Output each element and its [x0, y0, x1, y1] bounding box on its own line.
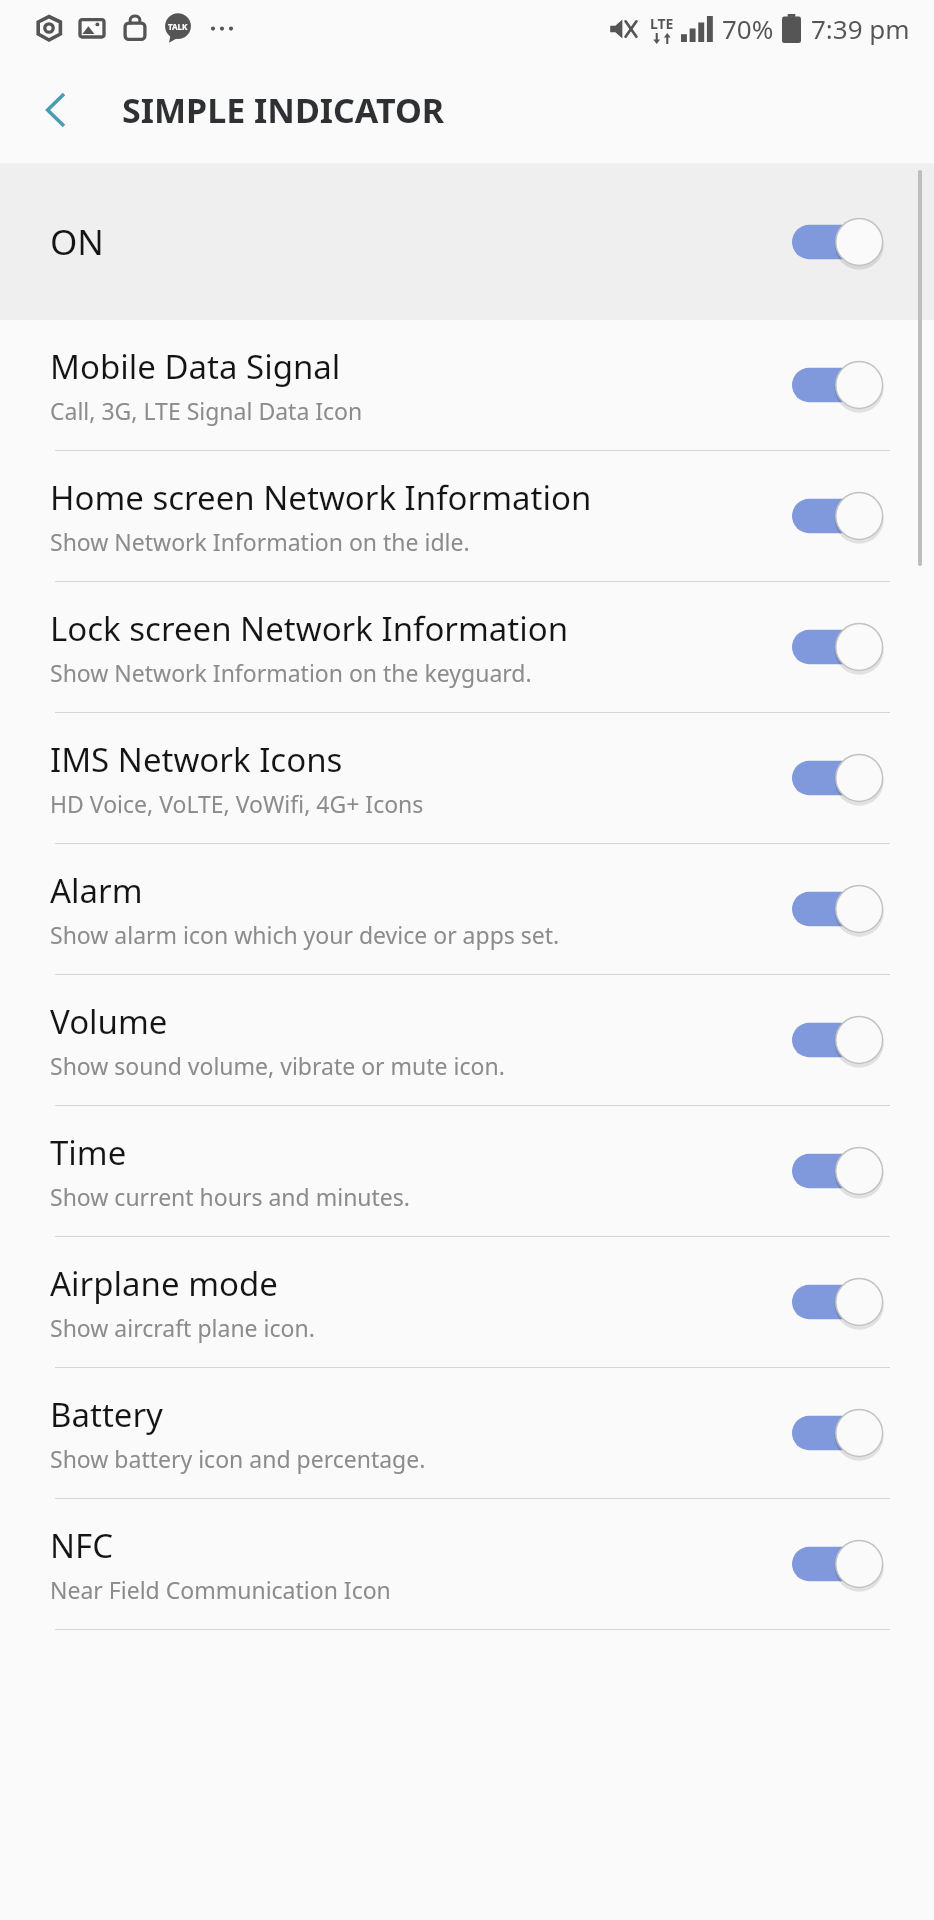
staticText: 70%: [722, 11, 774, 46]
staticText: Battery: [50, 1392, 163, 1437]
staticText: Mobile Data Signal: [50, 344, 341, 389]
button[interactable]: ON: [0, 163, 934, 320]
staticText: Show current hours and minutes.: [50, 1181, 411, 1212]
button[interactable]: Battery: [0, 1368, 934, 1498]
staticText: Time: [50, 1130, 127, 1175]
button[interactable]: Toggle: [792, 1538, 876, 1590]
button[interactable]: Toggle: [792, 359, 876, 411]
button[interactable]: Toggle: [792, 752, 876, 804]
button[interactable]: Toggle: [792, 883, 876, 935]
staticText: Volume: [50, 999, 168, 1044]
button[interactable]: NFC: [0, 1499, 934, 1629]
button[interactable]: Home screen Network Information: [0, 451, 934, 581]
button[interactable]: Mobile Data Signal: [0, 320, 934, 450]
button[interactable]: Toggle: [792, 621, 876, 673]
button[interactable]: Toggle: [792, 1407, 876, 1459]
staticText: Show alarm icon which your device or app…: [50, 919, 560, 950]
staticText: Show battery icon and percentage.: [50, 1443, 426, 1474]
staticText: Near Field Communication Icon: [50, 1574, 391, 1605]
button[interactable]: Toggle: [792, 1145, 876, 1197]
button[interactable]: Toggle: [792, 1276, 876, 1328]
button[interactable]: Toggle: [792, 490, 876, 542]
staticText: Show Network Information on the keyguard…: [50, 657, 532, 688]
staticText: SIMPLE INDICATOR: [122, 87, 445, 133]
staticText: Show aircraft plane icon.: [50, 1312, 315, 1343]
staticText: Call, 3G, LTE Signal Data Icon: [50, 395, 363, 426]
button[interactable]: Time: [0, 1106, 934, 1236]
staticText: LTE: [650, 14, 674, 33]
button[interactable]: Airplane mode: [0, 1237, 934, 1367]
staticText: Airplane mode: [50, 1261, 278, 1306]
staticText: Alarm: [50, 868, 143, 913]
staticText: Lock screen Network Information: [50, 606, 569, 651]
staticText: 7:39 pm: [811, 11, 910, 46]
staticText: ON: [50, 218, 104, 266]
staticText: IMS Network Icons: [50, 737, 343, 782]
button[interactable]: Toggle: [792, 216, 876, 268]
button[interactable]: Volume: [0, 975, 934, 1105]
staticText: NFC: [50, 1523, 114, 1568]
staticText: Home screen Network Information: [50, 475, 592, 520]
staticText: HD Voice, VoLTE, VoWifi, 4G+ Icons: [50, 788, 424, 819]
button[interactable]: Lock screen Network Information: [0, 582, 934, 712]
staticText: Show sound volume, vibrate or mute icon.: [50, 1050, 505, 1081]
staticText: Show Network Information on the idle.: [50, 526, 470, 557]
button[interactable]: Toggle: [792, 1014, 876, 1066]
button[interactable]: Alarm: [0, 844, 934, 974]
button[interactable]: Back: [22, 76, 90, 144]
staticText: TALK: [168, 21, 188, 32]
button[interactable]: IMS Network Icons: [0, 713, 934, 843]
